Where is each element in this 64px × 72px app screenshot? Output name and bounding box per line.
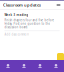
button[interactable]: Compose	[57, 53, 64, 62]
staticText: Week 3 reading	[4, 13, 28, 17]
staticText: discussion board.	[4, 25, 28, 29]
staticText: Finish chapters four and five before	[4, 18, 54, 22]
staticText: Add class comment	[4, 33, 29, 36]
button[interactable]: Tab	[16, 60, 32, 72]
button[interactable]: Tab	[32, 60, 48, 72]
button[interactable]: Tab	[0, 60, 16, 72]
staticText: Friday. Post one question to the	[4, 22, 50, 25]
staticText: Classroom updates	[3, 2, 41, 8]
button[interactable]: Tab	[48, 60, 64, 72]
button[interactable]: More	[55, 2, 61, 8]
